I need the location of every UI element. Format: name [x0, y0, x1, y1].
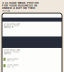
staticText: sit amet consect	[3, 51, 19, 53]
staticText: 3 CLAUDE-MADE PROTOS	[2, 1, 39, 4]
staticText: sit amet consect	[3, 24, 19, 27]
staticText: adipiscing elit	[3, 26, 13, 28]
staticText: UNDER A DAY OR TWO	[2, 6, 35, 10]
staticText: Lorem ipsum dolor	[3, 49, 20, 51]
staticText: dolor sit	[7, 66, 14, 68]
staticText: Lorem ipsum dolor	[3, 23, 20, 25]
staticText: Anthropic	[2, 10, 10, 12]
staticText: adipiscing	[3, 52, 10, 55]
staticText: Lorem ipsum	[7, 58, 19, 60]
staticText: dolor sit	[7, 59, 14, 62]
staticText: Lorem ipsum	[7, 64, 19, 66]
staticText: FOR YOUR BUSINESS IN	[2, 4, 37, 7]
